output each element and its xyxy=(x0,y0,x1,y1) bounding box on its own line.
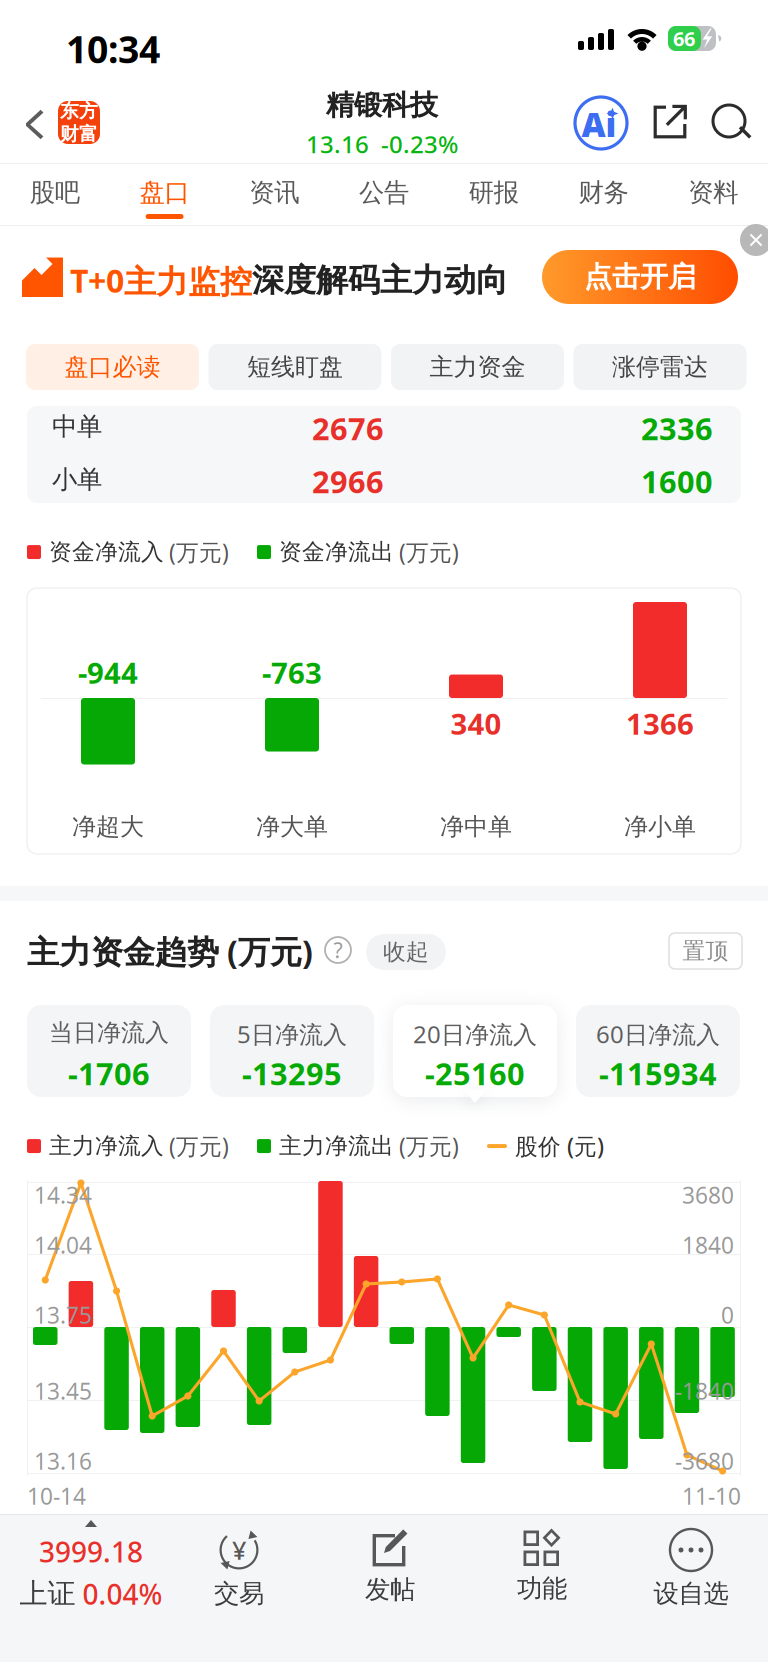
staticText: 小单 xyxy=(52,464,102,495)
button[interactable]: 财务 xyxy=(549,164,658,226)
staticText: 精锻科技 xyxy=(326,88,438,122)
staticText: Ai xyxy=(581,102,616,146)
staticText: 财务 xyxy=(578,177,628,208)
staticText: 资金净流入 xyxy=(49,538,164,566)
staticText: T+0主力监控 xyxy=(70,259,252,302)
button[interactable]: 当日净流入 xyxy=(27,1005,191,1097)
staticText: 13.16 xyxy=(34,1446,92,1476)
staticText: 60日净流入 xyxy=(596,1018,720,1050)
staticText: -944 xyxy=(78,653,138,692)
staticText: (万元) xyxy=(399,537,459,567)
button[interactable]: 盘口 xyxy=(110,164,219,226)
staticText: 主力净流出 xyxy=(279,1132,394,1160)
button[interactable]: 5日净流入 xyxy=(210,1005,374,1097)
button[interactable]: 资讯 xyxy=(219,164,329,226)
button[interactable]: ¥ xyxy=(174,1528,304,1608)
staticText: 股吧 xyxy=(30,177,80,208)
button[interactable]: 盘口必读 xyxy=(26,344,199,390)
button[interactable]: 60日净流入 xyxy=(576,1005,740,1097)
staticText: -1840 xyxy=(675,1376,734,1406)
staticText: 340 xyxy=(450,704,501,743)
staticText: 交易 xyxy=(214,1578,264,1609)
button[interactable]: 发帖 xyxy=(325,1528,455,1608)
staticText: (万元) xyxy=(399,1131,459,1161)
staticText: ? xyxy=(333,936,342,964)
button[interactable]: 3999.18 xyxy=(26,1520,156,1600)
button[interactable]: 主力资金 xyxy=(391,344,564,390)
button[interactable]: Search xyxy=(713,104,754,144)
button[interactable]: 资料 xyxy=(658,164,768,226)
staticText: 设自选 xyxy=(653,1578,728,1609)
staticText: 净大单 xyxy=(256,812,328,841)
staticText: 股价 (元) xyxy=(515,1131,604,1161)
staticText: 涨停雷达 xyxy=(612,352,708,382)
staticText: (万元) xyxy=(169,537,229,567)
staticText: 当日净流入 xyxy=(49,1018,169,1047)
staticText: 0.04% xyxy=(82,1575,162,1612)
staticText: 中单 xyxy=(52,411,102,442)
button[interactable]: 置顶 xyxy=(669,933,742,969)
staticText: 1600 xyxy=(641,461,713,502)
staticText: 2966 xyxy=(312,461,384,502)
staticText: 公告 xyxy=(359,177,409,208)
staticText: 1840 xyxy=(682,1230,734,1260)
staticText: 盘口必读 xyxy=(64,352,160,382)
staticText: 置顶 xyxy=(682,937,728,965)
button[interactable]: Back xyxy=(0,78,116,164)
staticText: 盘口 xyxy=(140,177,190,208)
staticText: 净中单 xyxy=(440,812,512,841)
staticText: 深度解码主力动向 xyxy=(252,261,508,300)
button[interactable]: 设自选 xyxy=(626,1528,756,1608)
staticText: 1366 xyxy=(626,704,694,743)
staticText: 2676 xyxy=(312,408,384,449)
staticText: 20日净流入 xyxy=(413,1018,537,1050)
staticText: 主力资金趋势 (万元) xyxy=(27,930,313,972)
staticText: -115934 xyxy=(599,1053,717,1094)
button[interactable]: 短线盯盘 xyxy=(208,344,381,390)
staticText: 13.45 xyxy=(34,1376,92,1406)
button[interactable]: 研报 xyxy=(439,164,549,226)
button[interactable]: 点击开启 xyxy=(542,250,738,304)
staticText: 3999.18 xyxy=(39,1533,143,1570)
staticText: 2336 xyxy=(641,408,713,449)
button[interactable]: 20日净流入 xyxy=(393,1005,557,1097)
button[interactable]: 收起 xyxy=(366,934,446,970)
staticText: 上证 xyxy=(19,1577,75,1611)
button[interactable]: AI assistant xyxy=(574,96,628,150)
staticText: 财富 xyxy=(60,122,98,145)
staticText: 点击开启 xyxy=(584,260,696,294)
button[interactable]: Share xyxy=(650,102,690,142)
staticText: 13.16 -0.23% xyxy=(306,128,458,160)
staticText: 11-10 xyxy=(682,1481,741,1511)
staticText: 5日净流入 xyxy=(237,1018,347,1050)
staticText: 资料 xyxy=(688,177,738,208)
staticText: 收起 xyxy=(383,938,429,966)
staticText: 10:34 xyxy=(66,24,160,74)
staticText: 10-14 xyxy=(27,1481,86,1511)
staticText: 主力净流入 xyxy=(49,1132,164,1160)
staticText: (万元) xyxy=(169,1131,229,1161)
button[interactable]: 公告 xyxy=(329,164,439,226)
button[interactable]: Close xyxy=(740,224,768,256)
staticText: ¥ xyxy=(232,1533,246,1567)
staticText: 净小单 xyxy=(624,812,696,841)
staticText: 13.75 xyxy=(34,1300,92,1330)
staticText: 0 xyxy=(721,1300,734,1330)
staticText: -1706 xyxy=(68,1053,150,1094)
staticText: 功能 xyxy=(517,1573,567,1604)
staticText: 14.34 xyxy=(34,1180,92,1210)
staticText: 东方 xyxy=(60,100,98,122)
staticText: -13295 xyxy=(242,1053,342,1094)
staticText: 净超大 xyxy=(72,812,144,841)
staticText: 研报 xyxy=(469,177,519,208)
button[interactable]: 功能 xyxy=(477,1528,607,1608)
staticText: -25160 xyxy=(425,1053,525,1094)
staticText: 14.04 xyxy=(34,1230,92,1260)
staticText: 资讯 xyxy=(249,177,299,208)
button[interactable]: 股吧 xyxy=(0,164,110,226)
staticText: 短线盯盘 xyxy=(247,352,343,382)
staticText: 发帖 xyxy=(365,1574,415,1605)
staticText: 资金净流出 xyxy=(279,538,394,566)
button[interactable]: 涨停雷达 xyxy=(573,344,746,390)
staticText: 3680 xyxy=(682,1180,734,1210)
